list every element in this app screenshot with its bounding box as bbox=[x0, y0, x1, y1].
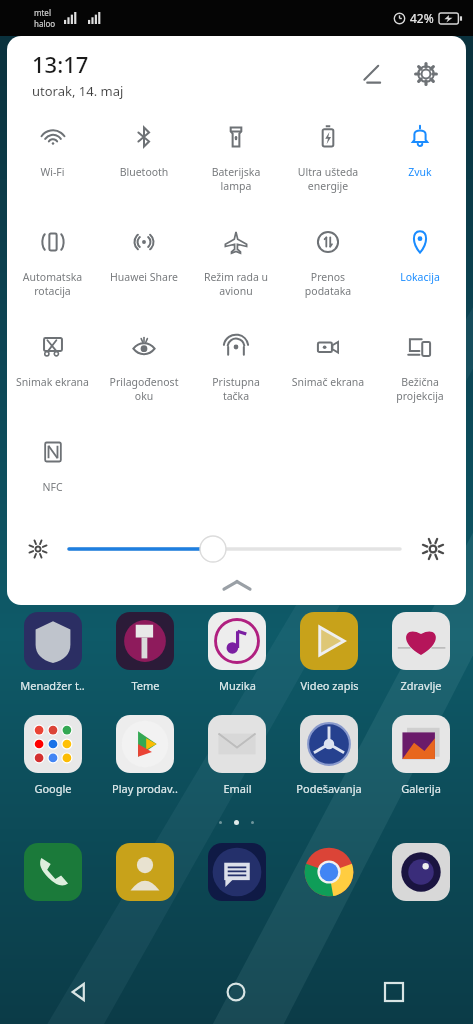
button[interactable]: Google bbox=[6, 715, 99, 796]
button[interactable]: Snimak ekrana bbox=[7, 322, 98, 427]
button[interactable]: Huawei Share bbox=[98, 217, 190, 322]
button[interactable]: Recents bbox=[315, 960, 473, 1024]
staticText: Zdravlje bbox=[400, 678, 442, 693]
staticText: 13:17 bbox=[32, 49, 89, 79]
button[interactable]: Collapse bbox=[7, 579, 466, 605]
staticText: Huawei Share bbox=[99, 270, 189, 284]
staticText: Snimač ekrana bbox=[283, 375, 373, 389]
button[interactable]: Menadžer t.. bbox=[6, 612, 99, 693]
button[interactable]: CAMERA bbox=[392, 843, 450, 901]
button[interactable]: SMS bbox=[208, 843, 266, 901]
button[interactable]: Email bbox=[191, 715, 283, 796]
staticText: Menadžer t.. bbox=[20, 678, 85, 693]
button[interactable]: Režim rada u avionu bbox=[190, 217, 282, 322]
button[interactable]: Bežična projekcija bbox=[374, 322, 466, 427]
staticText: haloo bbox=[34, 18, 56, 29]
staticText: Play prodav.. bbox=[112, 781, 178, 796]
button[interactable]: Muzika bbox=[191, 612, 283, 693]
button[interactable]: Video zapis bbox=[283, 612, 375, 693]
button[interactable]: Teme bbox=[99, 612, 191, 693]
staticText: Teme bbox=[131, 678, 160, 693]
staticText: Zvuk bbox=[375, 165, 465, 179]
staticText: 42% bbox=[410, 10, 434, 26]
button[interactable]: NFC bbox=[7, 427, 98, 515]
button[interactable]: Galerija bbox=[375, 715, 467, 796]
button[interactable]: CHROME bbox=[300, 843, 358, 901]
button[interactable]: Settings bbox=[404, 52, 448, 96]
staticText: Galerija bbox=[401, 781, 441, 796]
staticText: Bluetooth bbox=[99, 165, 189, 179]
button[interactable]: Snimač ekrana bbox=[282, 322, 374, 427]
button[interactable]: Home bbox=[157, 960, 315, 1024]
button[interactable]: Play prodav.. bbox=[99, 715, 191, 796]
button[interactable]: PHONE bbox=[24, 843, 82, 901]
staticText: Automatska rotacija bbox=[8, 270, 97, 298]
button[interactable]: Wi-Fi bbox=[7, 112, 98, 217]
staticText: Video zapis bbox=[300, 678, 359, 693]
staticText: Podešavanja bbox=[296, 781, 362, 796]
button[interactable]: Zvuk bbox=[374, 112, 466, 217]
staticText: Lokacija bbox=[375, 270, 465, 284]
staticText: Režim rada u avionu bbox=[191, 270, 281, 298]
staticText: Ultra ušteda energije bbox=[283, 165, 373, 193]
button[interactable]: Prilagođenost oku bbox=[98, 322, 190, 427]
staticText: utorak, 14. maj bbox=[32, 82, 124, 100]
button[interactable]: Bluetooth bbox=[98, 112, 190, 217]
button[interactable]: Pristupna tačka bbox=[190, 322, 282, 427]
staticText: Muzika bbox=[219, 678, 256, 693]
staticText: Bežična projekcija bbox=[375, 375, 465, 403]
button[interactable]: CONTACTS bbox=[116, 843, 174, 901]
button[interactable]: Ultra ušteda energije bbox=[282, 112, 374, 217]
staticText: Google bbox=[34, 781, 72, 796]
button[interactable]: Prenos podataka bbox=[282, 217, 374, 322]
staticText: Baterijska lampa bbox=[191, 165, 281, 193]
staticText: NFC bbox=[8, 480, 97, 494]
button[interactable]: Automatska rotacija bbox=[7, 217, 98, 322]
button[interactable]: Back bbox=[0, 960, 157, 1024]
button[interactable]: Lokacija bbox=[374, 217, 466, 322]
staticText: Email bbox=[223, 781, 252, 796]
staticText: Pristupna tačka bbox=[191, 375, 281, 403]
staticText: mtel bbox=[34, 7, 51, 18]
button[interactable]: Baterijska lampa bbox=[190, 112, 282, 217]
staticText: Prenos podataka bbox=[283, 270, 373, 298]
button[interactable]: Edit bbox=[350, 52, 394, 96]
staticText: Wi-Fi bbox=[8, 165, 97, 179]
staticText: Snimak ekrana bbox=[8, 375, 97, 389]
button[interactable]: Zdravlje bbox=[375, 612, 467, 693]
button[interactable]: Podešavanja bbox=[283, 715, 375, 796]
staticText: Prilagođenost oku bbox=[99, 375, 189, 403]
